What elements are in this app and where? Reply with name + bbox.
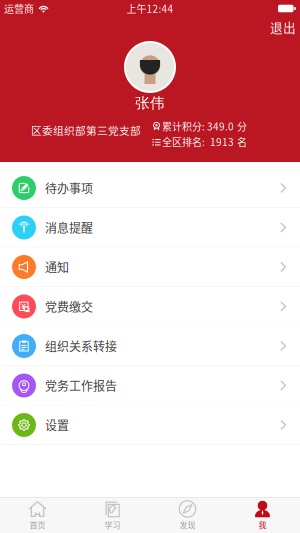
staticText: 上午12:44 [126, 1, 173, 16]
button[interactable]: 设置 [0, 405, 300, 445]
button[interactable]: 党费缴交 [0, 287, 300, 326]
button[interactable]: 党务工作报告 [0, 366, 300, 405]
staticText: 我 [258, 519, 266, 531]
button[interactable]: 学习 [75, 498, 150, 533]
staticText: 党费缴交 [45, 298, 93, 315]
staticText: 学习 [104, 519, 120, 531]
button[interactable]: 组织关系转接 [0, 326, 300, 366]
staticText: 通知 [45, 258, 69, 276]
staticText: 运营商 [4, 1, 34, 16]
staticText: 张伟 [135, 94, 165, 112]
button[interactable]: 发现 [150, 498, 225, 533]
button[interactable]: 我 [225, 498, 300, 533]
staticText: 名 [237, 134, 247, 149]
staticText: 待办事项 [45, 179, 93, 197]
staticText: 退出 [270, 18, 296, 36]
staticText: 累计积分: [162, 119, 205, 133]
staticText: 区委组织部第三党支部 [31, 122, 141, 138]
button[interactable]: 退出 [260, 17, 300, 37]
button[interactable]: 消息提醒 [0, 208, 300, 247]
staticText: 消息提醒 [45, 219, 93, 236]
staticText: 设置 [45, 416, 69, 434]
staticText: 全区排名: [162, 134, 205, 149]
staticText: 分 [237, 119, 247, 133]
staticText: 发现 [179, 519, 195, 531]
staticText: 首页 [29, 519, 45, 531]
staticText: 1913 [210, 134, 234, 149]
button[interactable]: 首页 [0, 498, 75, 533]
button[interactable]: 通知 [0, 247, 300, 287]
staticText: 党务工作报告 [45, 377, 117, 394]
staticText: 349.0 [207, 119, 234, 133]
button[interactable]: 待办事项 [0, 168, 300, 208]
staticText: 组织关系转接 [45, 337, 117, 355]
